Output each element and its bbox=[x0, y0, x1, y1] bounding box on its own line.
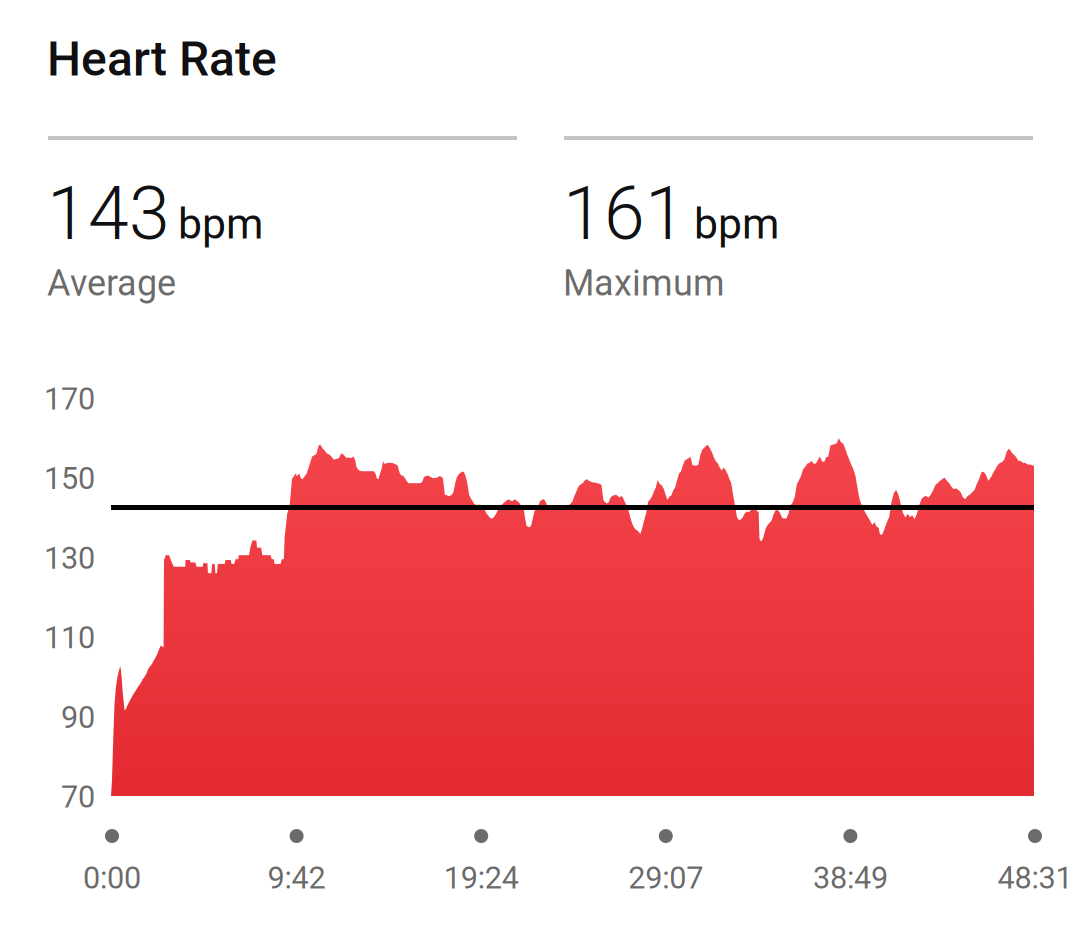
staticText: 130 bbox=[44, 540, 95, 576]
staticText: 48:31 bbox=[997, 860, 1072, 896]
staticText: 161 bbox=[563, 171, 686, 257]
staticText: Maximum bbox=[563, 262, 725, 304]
staticText: 150 bbox=[44, 461, 95, 496]
staticText: 19:24 bbox=[444, 860, 519, 896]
button[interactable]: 143 bbox=[48, 136, 517, 308]
button[interactable]: 161 bbox=[564, 136, 1033, 308]
staticText: 90 bbox=[61, 699, 95, 735]
staticText: 110 bbox=[44, 620, 95, 656]
staticText: 38:49 bbox=[813, 860, 888, 896]
staticText: 170 bbox=[44, 381, 95, 417]
staticText: bpm bbox=[178, 199, 263, 249]
staticText: 29:07 bbox=[628, 860, 703, 896]
staticText: 143 bbox=[47, 171, 170, 257]
staticText: Average bbox=[47, 262, 176, 304]
staticText: 70 bbox=[61, 779, 95, 815]
staticText: bpm bbox=[694, 199, 779, 249]
staticText: Heart Rate bbox=[47, 31, 277, 87]
staticText: 9:42 bbox=[268, 860, 326, 896]
staticText: 0:00 bbox=[83, 860, 141, 896]
